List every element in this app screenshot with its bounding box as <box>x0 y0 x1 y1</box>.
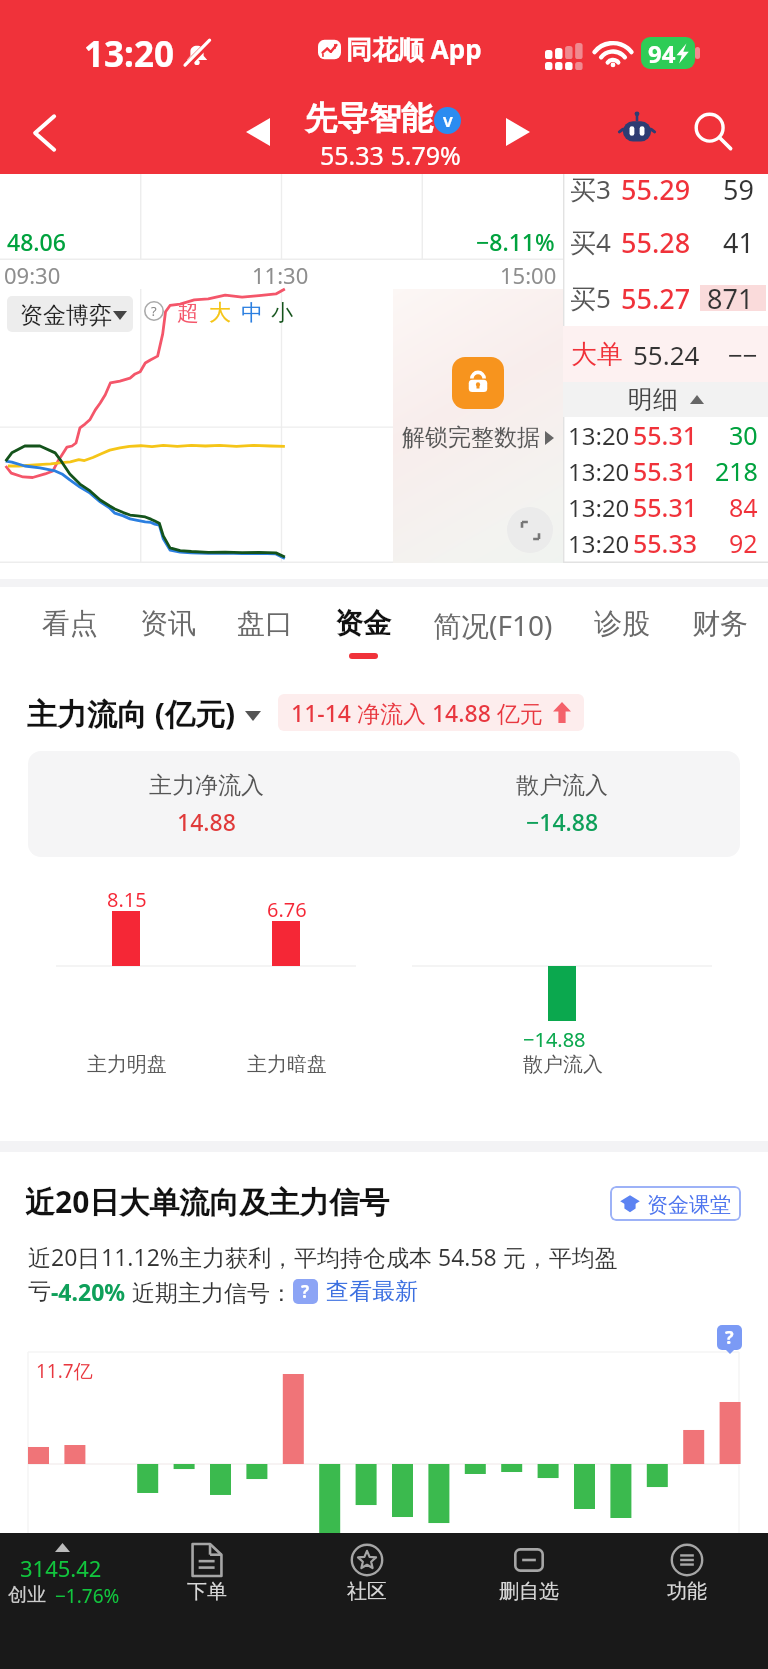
staticText: 中 <box>241 299 263 327</box>
staticText: V <box>443 111 453 131</box>
staticText: 看点 <box>42 606 98 641</box>
button[interactable]: 买3 <box>563 174 768 214</box>
button[interactable]: 诊股 <box>594 590 650 659</box>
staticText: 资金课堂 <box>647 1192 731 1218</box>
staticText: 主力流向 (亿元) <box>27 693 236 734</box>
staticText: 小 <box>271 299 293 327</box>
staticText: 55.28 <box>621 224 691 261</box>
button[interactable]: Help <box>144 301 164 321</box>
staticText: 解锁完整数据 <box>402 423 540 452</box>
staticText: 55.33 <box>633 526 698 560</box>
button[interactable]: 3145.42 <box>0 1533 150 1613</box>
staticText: 11.7亿 <box>36 1358 93 1384</box>
staticText: 资金 <box>335 606 391 641</box>
staticText: 近期主力信号： <box>126 1276 293 1307</box>
button[interactable]: 11-14 净流入 14.88 亿元 <box>278 694 584 731</box>
staticText: 大单 <box>571 338 623 371</box>
button[interactable]: 删自选 <box>483 1533 575 1613</box>
staticText: 92 <box>729 526 758 560</box>
staticText: 创业 <box>8 1583 46 1607</box>
staticText: 先导智能 <box>305 98 433 138</box>
staticText: −8.11% <box>476 226 555 257</box>
button[interactable]: 13:20 <box>563 489 768 525</box>
button[interactable]: 看点 <box>42 590 98 659</box>
staticText: 主力获利，平均持仓成本 54.58 元，平均盈 <box>179 1241 618 1272</box>
button[interactable]: Next stock <box>492 106 544 158</box>
button[interactable]: 13:20 <box>563 453 768 489</box>
staticText: −− <box>728 337 758 372</box>
staticText: 查看最新 <box>326 1277 418 1306</box>
staticText: 13:20 <box>568 491 630 524</box>
button[interactable]: 13:20 <box>563 417 768 453</box>
staticText: 59 <box>723 171 754 208</box>
button[interactable]: 资金博弈 <box>7 296 133 332</box>
staticText: −14.88 <box>526 806 599 837</box>
button[interactable]: 盘口 <box>237 590 293 659</box>
button[interactable]: 财务 <box>692 590 748 659</box>
staticText: ? <box>301 1280 310 1303</box>
staticText: 主力暗盘 <box>247 1052 327 1077</box>
staticText: 下单 <box>187 1579 227 1604</box>
button[interactable]: 大单 <box>563 326 768 382</box>
button[interactable]: 资讯 <box>140 590 196 659</box>
staticText: 13:20 <box>568 527 630 560</box>
staticText: 55.31 <box>633 454 698 488</box>
button[interactable]: Fullscreen <box>507 507 553 553</box>
staticText: 55.31 <box>633 418 698 452</box>
staticText: 买4 <box>570 224 611 260</box>
staticText: 09:30 <box>4 260 61 289</box>
staticText: 94 <box>648 37 676 69</box>
staticText: 218 <box>715 454 758 488</box>
staticText: 超 <box>177 299 199 327</box>
button[interactable]: 13:20 <box>563 525 768 561</box>
button[interactable]: Help <box>717 1325 742 1350</box>
staticText: 明细 <box>628 384 678 415</box>
button[interactable]: 解锁完整数据 <box>393 289 563 563</box>
staticText: 诊股 <box>594 606 650 641</box>
staticText: 散户流入 <box>516 771 608 800</box>
staticText: 简况(F10) <box>433 606 553 644</box>
staticText: 买3 <box>570 171 611 207</box>
staticText: 13:20 <box>568 455 630 488</box>
staticText: 48.06 <box>7 226 66 257</box>
staticText: 散户流入 <box>523 1052 603 1077</box>
button[interactable]: 简况(F10) <box>433 590 553 662</box>
staticText: 社区 <box>347 1579 387 1604</box>
staticText: 近20日 <box>28 1241 101 1272</box>
button[interactable]: 资金 <box>335 590 391 659</box>
button[interactable]: 下单 <box>161 1533 253 1613</box>
staticText: 11-14 净流入 14.88 亿元 <box>291 697 543 728</box>
staticText: 6.76 <box>267 896 307 923</box>
button[interactable]: 明细 <box>563 382 768 417</box>
button[interactable]: 资金课堂 <box>610 1186 741 1221</box>
staticText: 大 <box>209 299 231 327</box>
staticText: 55.29 <box>621 171 691 208</box>
button[interactable]: 买5 <box>563 270 768 326</box>
staticText: 近20日大单流向及主力信号 <box>25 1181 390 1222</box>
staticText: 871 <box>707 280 754 317</box>
staticText: 13:20 <box>568 419 630 452</box>
staticText: 同花顺 App <box>346 31 482 67</box>
staticText: 55.33 5.79% <box>320 138 461 172</box>
button[interactable]: AI assistant <box>608 102 666 160</box>
staticText: 资金博弈 <box>20 301 112 330</box>
button[interactable]: 买4 <box>563 214 768 270</box>
staticText: 15:00 <box>500 260 557 289</box>
button[interactable]: 社区 <box>321 1533 413 1613</box>
staticText: 亏 <box>28 1277 51 1306</box>
button[interactable]: Search <box>684 102 742 160</box>
staticText: -4.20% <box>51 1276 126 1307</box>
staticText: 11:30 <box>252 260 309 289</box>
staticText: 主力明盘 <box>87 1052 167 1077</box>
staticText: 13:20 <box>84 30 174 78</box>
staticText: 55.31 <box>633 490 698 524</box>
staticText: 41 <box>723 224 754 261</box>
staticText: −1.76% <box>55 1583 120 1609</box>
staticText: 14.88 <box>177 806 236 837</box>
staticText: −14.88 <box>523 1026 586 1053</box>
button[interactable]: 功能 <box>641 1533 733 1613</box>
button[interactable]: Back <box>14 102 76 164</box>
button[interactable]: Previous stock <box>232 106 284 158</box>
staticText: ? <box>725 1325 734 1350</box>
staticText: 3145.42 <box>20 1553 102 1583</box>
